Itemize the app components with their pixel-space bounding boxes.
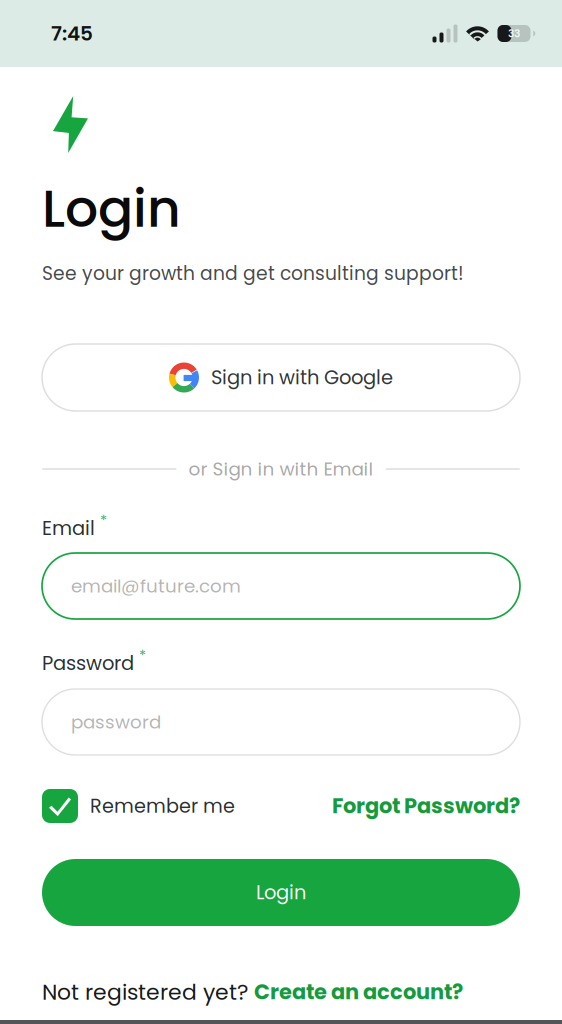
staticText: * <box>100 510 107 531</box>
staticText: Sign in with Google <box>211 364 393 391</box>
staticText: * <box>139 645 146 666</box>
button[interactable]: password <box>42 689 520 755</box>
staticText: Not registered yet? <box>42 977 254 1007</box>
staticText: Email <box>42 514 95 542</box>
staticText: 33 <box>508 26 520 41</box>
button[interactable]: Sign in with Google <box>42 344 520 411</box>
staticText: or Sign in with Email <box>188 456 373 482</box>
staticText: email@future.com <box>71 573 241 599</box>
staticText: Password <box>42 649 134 677</box>
staticText: 7:45 <box>51 19 93 47</box>
button[interactable]: Remember me <box>42 789 235 823</box>
button[interactable]: Forgot Password? <box>332 791 520 821</box>
staticText: password <box>71 709 161 735</box>
staticText: Create an account? <box>254 977 463 1007</box>
staticText: Remember me <box>90 793 235 819</box>
staticText: See your growth and get consulting suppo… <box>42 260 464 286</box>
button[interactable]: email@future.com <box>42 553 520 619</box>
button[interactable]: Create an account? <box>254 977 463 1007</box>
staticText: Login <box>256 879 306 906</box>
staticText: Login <box>42 172 181 245</box>
staticText: Forgot Password? <box>332 791 520 821</box>
button[interactable]: Login <box>42 859 520 926</box>
